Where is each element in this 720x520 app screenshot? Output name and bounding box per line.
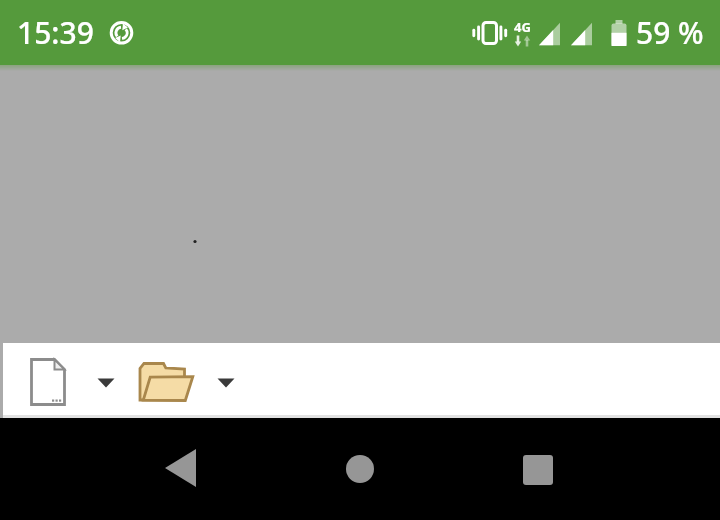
button[interactable] bbox=[132, 351, 200, 410]
button[interactable] bbox=[22, 352, 74, 411]
button[interactable] bbox=[208, 365, 244, 401]
button[interactable] bbox=[330, 439, 390, 499]
staticText: 59 % bbox=[636, 12, 704, 53]
staticText: 15:39 bbox=[17, 12, 94, 53]
button[interactable] bbox=[508, 440, 568, 500]
button[interactable] bbox=[88, 365, 124, 401]
button[interactable] bbox=[151, 438, 211, 498]
staticText: 4G bbox=[514, 18, 531, 36]
